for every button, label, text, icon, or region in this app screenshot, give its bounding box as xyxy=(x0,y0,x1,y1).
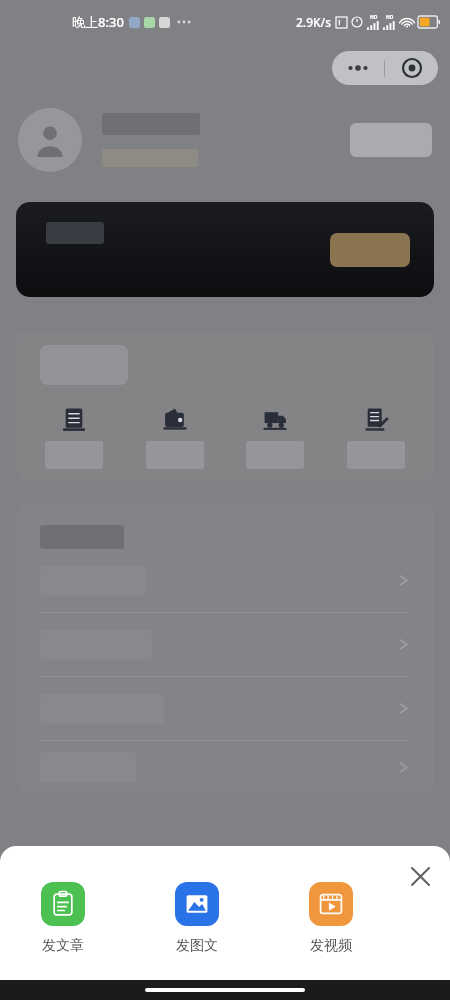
button[interactable]: Quick action xyxy=(334,407,418,469)
button[interactable] xyxy=(16,202,434,297)
staticText: HD xyxy=(386,14,394,21)
button[interactable]: 发视频 xyxy=(290,882,372,955)
staticText: 发文章 xyxy=(42,937,84,955)
button[interactable]: Close xyxy=(400,856,440,896)
staticText: 晚上8:30 xyxy=(72,13,124,31)
button[interactable]: Quick action xyxy=(32,407,116,469)
staticText: HD xyxy=(370,14,378,21)
button[interactable]: Quick action xyxy=(133,407,217,469)
staticText: 发图文 xyxy=(176,937,218,955)
button[interactable]: Quick action xyxy=(233,407,317,469)
button[interactable]: Close xyxy=(385,51,438,85)
staticText: 2.9K/s xyxy=(296,14,332,30)
button[interactable]: 发文章 xyxy=(22,882,104,955)
staticText: 发视频 xyxy=(310,937,352,955)
button[interactable]: 发图文 xyxy=(156,882,238,955)
button[interactable]: More xyxy=(332,51,384,85)
